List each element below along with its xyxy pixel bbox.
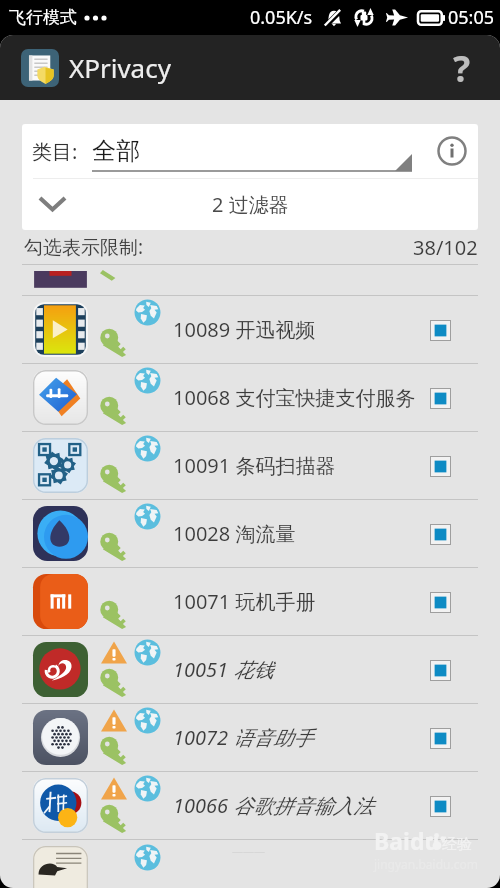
staticText: 10068 支付宝快捷支付服务 — [173, 384, 416, 411]
button[interactable]: 10066 谷歌拼音输入法 — [0, 771, 500, 839]
button[interactable]: 10089 开迅视频 — [0, 295, 500, 363]
button[interactable]: Info — [432, 131, 472, 171]
staticText: 2 过滤器 — [212, 191, 289, 218]
button[interactable]: Restrict 谷歌拼音输入法 — [418, 784, 462, 828]
button[interactable]: 全部 — [92, 124, 420, 178]
button[interactable]: 10091 条码扫描器 — [0, 431, 500, 499]
staticText: Baidu — [374, 825, 440, 856]
staticText: ——— — [232, 843, 265, 858]
button[interactable]: Restrict 玩机手册 — [418, 580, 462, 624]
button[interactable]: 10071 玩机手册 — [0, 567, 500, 635]
staticText: 10072 语音助手 — [173, 724, 314, 751]
staticText: 全部 — [92, 136, 140, 166]
button[interactable]: Help — [434, 40, 490, 96]
staticText: 勾选表示限制: — [24, 234, 144, 260]
button[interactable]: Restrict 语音助手 — [418, 716, 462, 760]
staticText: 飞行模式 — [9, 7, 77, 28]
staticText: 10051 花钱 — [173, 656, 274, 683]
staticText: XPrivacy — [69, 50, 171, 85]
button[interactable]: Restrict 条码扫描器 — [418, 444, 462, 488]
staticText: 10089 开迅视频 — [173, 316, 316, 343]
button[interactable]: Restrict 支付宝快捷支付服务 — [418, 376, 462, 420]
staticText: ? — [453, 44, 471, 93]
staticText: 10071 玩机手册 — [173, 588, 316, 615]
staticText: 10066 谷歌拼音输入法 — [173, 792, 374, 819]
staticText: 05:05 — [448, 5, 495, 30]
button[interactable]: 10028 淘流量 — [0, 499, 500, 567]
button[interactable]: Restrict 花钱 — [418, 648, 462, 692]
staticText: 类目: — [32, 138, 78, 165]
staticText: 10028 淘流量 — [173, 520, 296, 547]
button[interactable]: Restrict 淘流量 — [418, 512, 462, 556]
staticText: 38/102 — [413, 234, 478, 261]
button[interactable]: Restrict 开迅视频 — [418, 308, 462, 352]
staticText: 经验 — [442, 835, 472, 854]
staticText: 10091 条码扫描器 — [173, 452, 336, 479]
button[interactable]: 2 过滤器 — [22, 179, 478, 230]
button[interactable]: 10051 花钱 — [0, 635, 500, 703]
button[interactable]: 10072 语音助手 — [0, 703, 500, 771]
staticText: 0.05K/s — [250, 5, 313, 30]
button[interactable]: 10068 支付宝快捷支付服务 — [0, 363, 500, 431]
